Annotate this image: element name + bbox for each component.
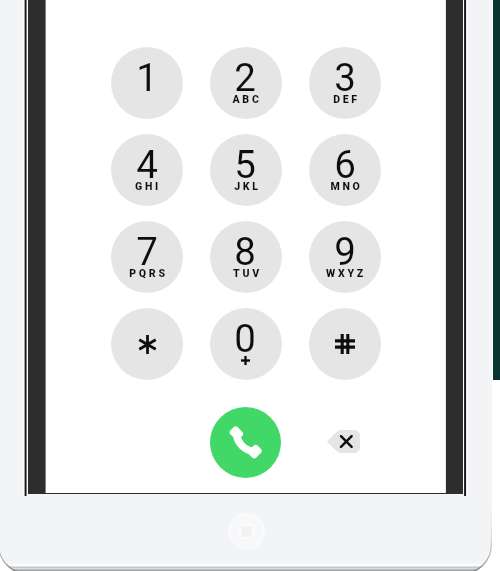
staticText: GHI [135,180,161,192]
button[interactable] [210,47,282,119]
button[interactable] [111,221,183,293]
button[interactable] [111,308,183,380]
staticText: MNO [330,180,363,192]
staticText: JKL [234,180,261,192]
staticText: TUV [233,267,262,279]
staticText: 9 [334,229,356,274]
staticText: PQRS [129,267,168,279]
staticText: 7 [136,229,158,274]
button[interactable] [309,308,381,380]
button[interactable] [309,221,381,293]
staticText: ABC [232,93,262,105]
button[interactable] [210,221,282,293]
staticText: DEF [333,93,360,105]
staticText: 4 [136,142,158,187]
staticText: 1 [136,55,158,100]
staticText: 0 [234,316,256,361]
staticText: 3 [334,55,356,100]
button[interactable] [111,47,183,119]
staticText: 8 [234,229,256,274]
staticText: 2 [234,55,256,100]
button[interactable] [210,134,282,206]
staticText: 5 [234,142,256,187]
button[interactable] [309,47,381,119]
staticText: WXYZ [326,267,366,279]
button[interactable]: Backspace [327,430,360,453]
button[interactable] [210,308,282,380]
button[interactable] [309,134,381,206]
button[interactable]: Call [210,407,281,478]
button[interactable] [111,134,183,206]
staticText: 6 [334,142,356,187]
